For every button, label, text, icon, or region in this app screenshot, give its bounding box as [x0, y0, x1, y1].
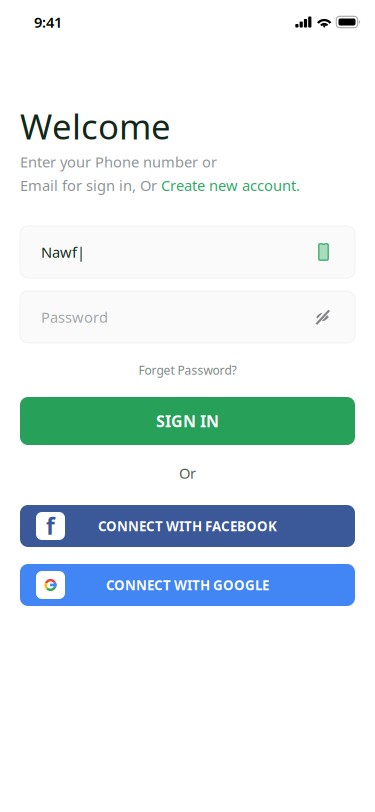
button[interactable]: Create new account.	[161, 175, 300, 195]
staticText: f	[46, 511, 55, 541]
staticText: 9:41	[34, 12, 62, 32]
staticText: Forget Password?	[138, 362, 236, 378]
staticText: Password	[41, 307, 108, 327]
button[interactable]: CONNECT WITH GOOGLE	[0, 564, 375, 606]
staticText: Welcome	[20, 103, 171, 149]
staticText: Nawf|	[41, 242, 85, 262]
button[interactable]: Phone number or email	[0, 226, 375, 278]
staticText: CONNECT WITH FACEBOOK	[98, 517, 277, 535]
staticText: Create new account.	[161, 175, 300, 195]
staticText: Email for sign in, Or	[20, 175, 161, 195]
button[interactable]: f	[0, 505, 375, 547]
staticText: SIGN IN	[156, 410, 219, 432]
staticText: Enter your Phone number or	[20, 152, 217, 171]
button[interactable]: SIGN IN	[0, 397, 375, 445]
button[interactable]: Password	[0, 291, 375, 343]
button[interactable]: Forget Password?	[0, 361, 375, 379]
staticText: Or	[179, 463, 196, 483]
staticText: CONNECT WITH GOOGLE	[106, 576, 269, 594]
